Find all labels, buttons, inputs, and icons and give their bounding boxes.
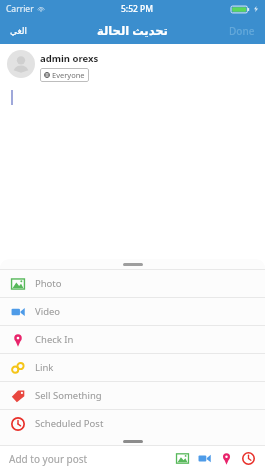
- button[interactable]: Sell Something: [0, 382, 265, 409]
- staticText: Carrier: [6, 3, 34, 15]
- staticText: 5:52 PM: [121, 3, 154, 15]
- button[interactable]: Link: [0, 354, 265, 381]
- staticText: Link: [35, 361, 54, 374]
- button[interactable]: Check In: [0, 326, 265, 353]
- staticText: Done: [229, 24, 255, 38]
- staticText: Add to your post: [9, 452, 88, 466]
- staticText: Everyone: [52, 70, 85, 80]
- button[interactable]: Schedule post: [241, 451, 256, 466]
- button[interactable]: Add video: [197, 451, 212, 466]
- button[interactable]: Done: [219, 20, 265, 42]
- staticText: Check In: [35, 333, 74, 346]
- button[interactable]: Everyone: [40, 68, 89, 82]
- staticText: Sell Something: [35, 389, 102, 402]
- staticText: Photo: [35, 277, 62, 290]
- staticText: تحديث الحالة: [97, 23, 168, 39]
- button[interactable]: Scheduled Post: [0, 410, 265, 437]
- button[interactable]: Photo: [0, 270, 265, 297]
- staticText: admin orexs: [40, 52, 99, 65]
- staticText: Scheduled Post: [35, 417, 104, 430]
- button[interactable]: Add photo: [175, 451, 190, 466]
- button[interactable]: Check in: [219, 451, 234, 466]
- button[interactable]: الغي: [0, 22, 38, 40]
- button[interactable]: Video: [0, 298, 265, 325]
- staticText: Video: [35, 305, 61, 318]
- staticText: الغي: [10, 26, 28, 36]
